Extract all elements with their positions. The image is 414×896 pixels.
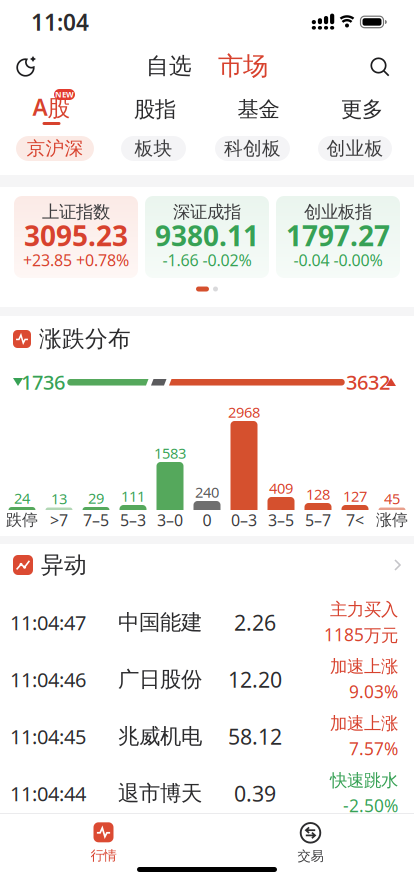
staticText: 中国能建 — [118, 609, 202, 636]
staticText: 0 — [202, 509, 211, 531]
staticText: >7 — [50, 509, 68, 531]
staticText: 深证成指 — [173, 201, 241, 223]
staticText: 3632 — [346, 369, 390, 395]
staticText: 7–5 — [83, 509, 109, 531]
staticText: 409 — [269, 478, 293, 498]
staticText: 创业板指 — [304, 201, 372, 223]
button[interactable]: 上证指数 — [14, 196, 138, 278]
button[interactable]: 交易 — [250, 822, 370, 864]
staticText: 0.39 — [234, 779, 276, 808]
staticText: 11:04:46 — [10, 666, 86, 693]
button[interactable]: A股 — [0, 88, 103, 131]
button[interactable]: 科创板 — [215, 136, 290, 161]
button[interactable]: Dark mode — [6, 46, 45, 85]
button[interactable]: 创业板指 — [276, 196, 400, 278]
staticText: 58.12 — [228, 722, 282, 751]
staticText: 涨跌分布 — [39, 325, 131, 353]
button[interactable]: 异动 — [0, 553, 414, 577]
staticText: 7.57% — [349, 737, 398, 760]
staticText: A股 — [32, 92, 70, 122]
staticText: 12.20 — [228, 665, 282, 694]
staticText: 兆威机电 — [118, 723, 202, 750]
button[interactable]: 深证成指 — [145, 196, 269, 278]
staticText: 加速上涨 — [330, 713, 398, 734]
staticText: 市场 — [218, 50, 268, 81]
staticText: 主力买入 — [330, 599, 398, 620]
staticText: 11:04:44 — [10, 780, 86, 807]
staticText: 自选 — [146, 52, 192, 80]
staticText: 1736 — [21, 369, 65, 395]
staticText: 11:04:47 — [10, 609, 86, 636]
button[interactable]: 基金 — [207, 88, 310, 131]
staticText: +23.85 +0.78% — [23, 249, 129, 271]
staticText: 2968 — [228, 402, 260, 422]
button[interactable]: 股指 — [103, 88, 206, 131]
staticText: NEW — [55, 89, 74, 100]
staticText: 3095.23 — [24, 217, 128, 254]
staticText: 股指 — [134, 96, 176, 123]
staticText: 基金 — [237, 96, 279, 123]
staticText: -0.04 -0.00% — [293, 249, 382, 271]
button[interactable]: 创业板 — [318, 136, 392, 161]
button[interactable]: 自选 — [146, 52, 192, 80]
staticText: -2.50% — [343, 794, 398, 817]
staticText: 240 — [195, 482, 219, 502]
staticText: 创业板 — [326, 137, 383, 160]
staticText: 1797.27 — [286, 217, 390, 254]
staticText: 111 — [121, 486, 145, 506]
staticText: 跌停 — [6, 510, 38, 530]
button[interactable]: Search — [361, 48, 398, 85]
staticText: 13 — [51, 489, 67, 508]
button[interactable]: 板块 — [121, 136, 186, 161]
staticText: 交易 — [297, 848, 323, 864]
staticText: 11:04:45 — [10, 723, 86, 750]
staticText: 1583 — [154, 443, 186, 463]
staticText: 异动 — [41, 551, 87, 579]
staticText: 0–3 — [231, 509, 257, 531]
button[interactable]: 11:04:44 — [0, 765, 414, 822]
staticText: 7< — [346, 509, 364, 531]
staticText: 3–0 — [157, 509, 183, 531]
staticText: 1185万元 — [324, 623, 398, 646]
staticText: 128 — [306, 484, 330, 504]
button[interactable]: 市场 — [218, 50, 268, 81]
button[interactable]: 行情 — [43, 822, 163, 864]
staticText: 127 — [343, 486, 367, 506]
staticText: -1.66 -0.02% — [162, 249, 251, 271]
button[interactable]: 11:04:46 — [0, 651, 414, 708]
staticText: 板块 — [134, 137, 172, 160]
staticText: 11:04 — [31, 7, 89, 37]
staticText: 京沪深 — [26, 137, 83, 160]
button[interactable]: 11:04:45 — [0, 708, 414, 765]
staticText: 快速跳水 — [330, 770, 398, 791]
staticText: 2.26 — [234, 608, 276, 637]
staticText: 45 — [384, 489, 400, 508]
staticText: 24 — [14, 488, 30, 508]
staticText: 5–7 — [305, 509, 331, 531]
staticText: 行情 — [90, 847, 116, 864]
staticText: 更多 — [341, 96, 383, 123]
staticText: 涨停 — [376, 510, 408, 530]
staticText: 9380.11 — [155, 217, 259, 254]
button[interactable]: 更多 — [310, 88, 413, 131]
staticText: 加速上涨 — [330, 656, 398, 677]
staticText: 广日股份 — [118, 666, 202, 693]
staticText: 3–5 — [268, 509, 294, 531]
staticText: 退市博天 — [118, 780, 202, 807]
button[interactable]: 11:04:47 — [0, 594, 414, 651]
staticText: 9.03% — [349, 680, 398, 703]
staticText: 5–3 — [120, 509, 146, 531]
staticText: 上证指数 — [42, 201, 110, 223]
button[interactable]: 京沪深 — [16, 136, 94, 161]
staticText: 科创板 — [224, 137, 281, 160]
staticText: 29 — [88, 488, 104, 508]
